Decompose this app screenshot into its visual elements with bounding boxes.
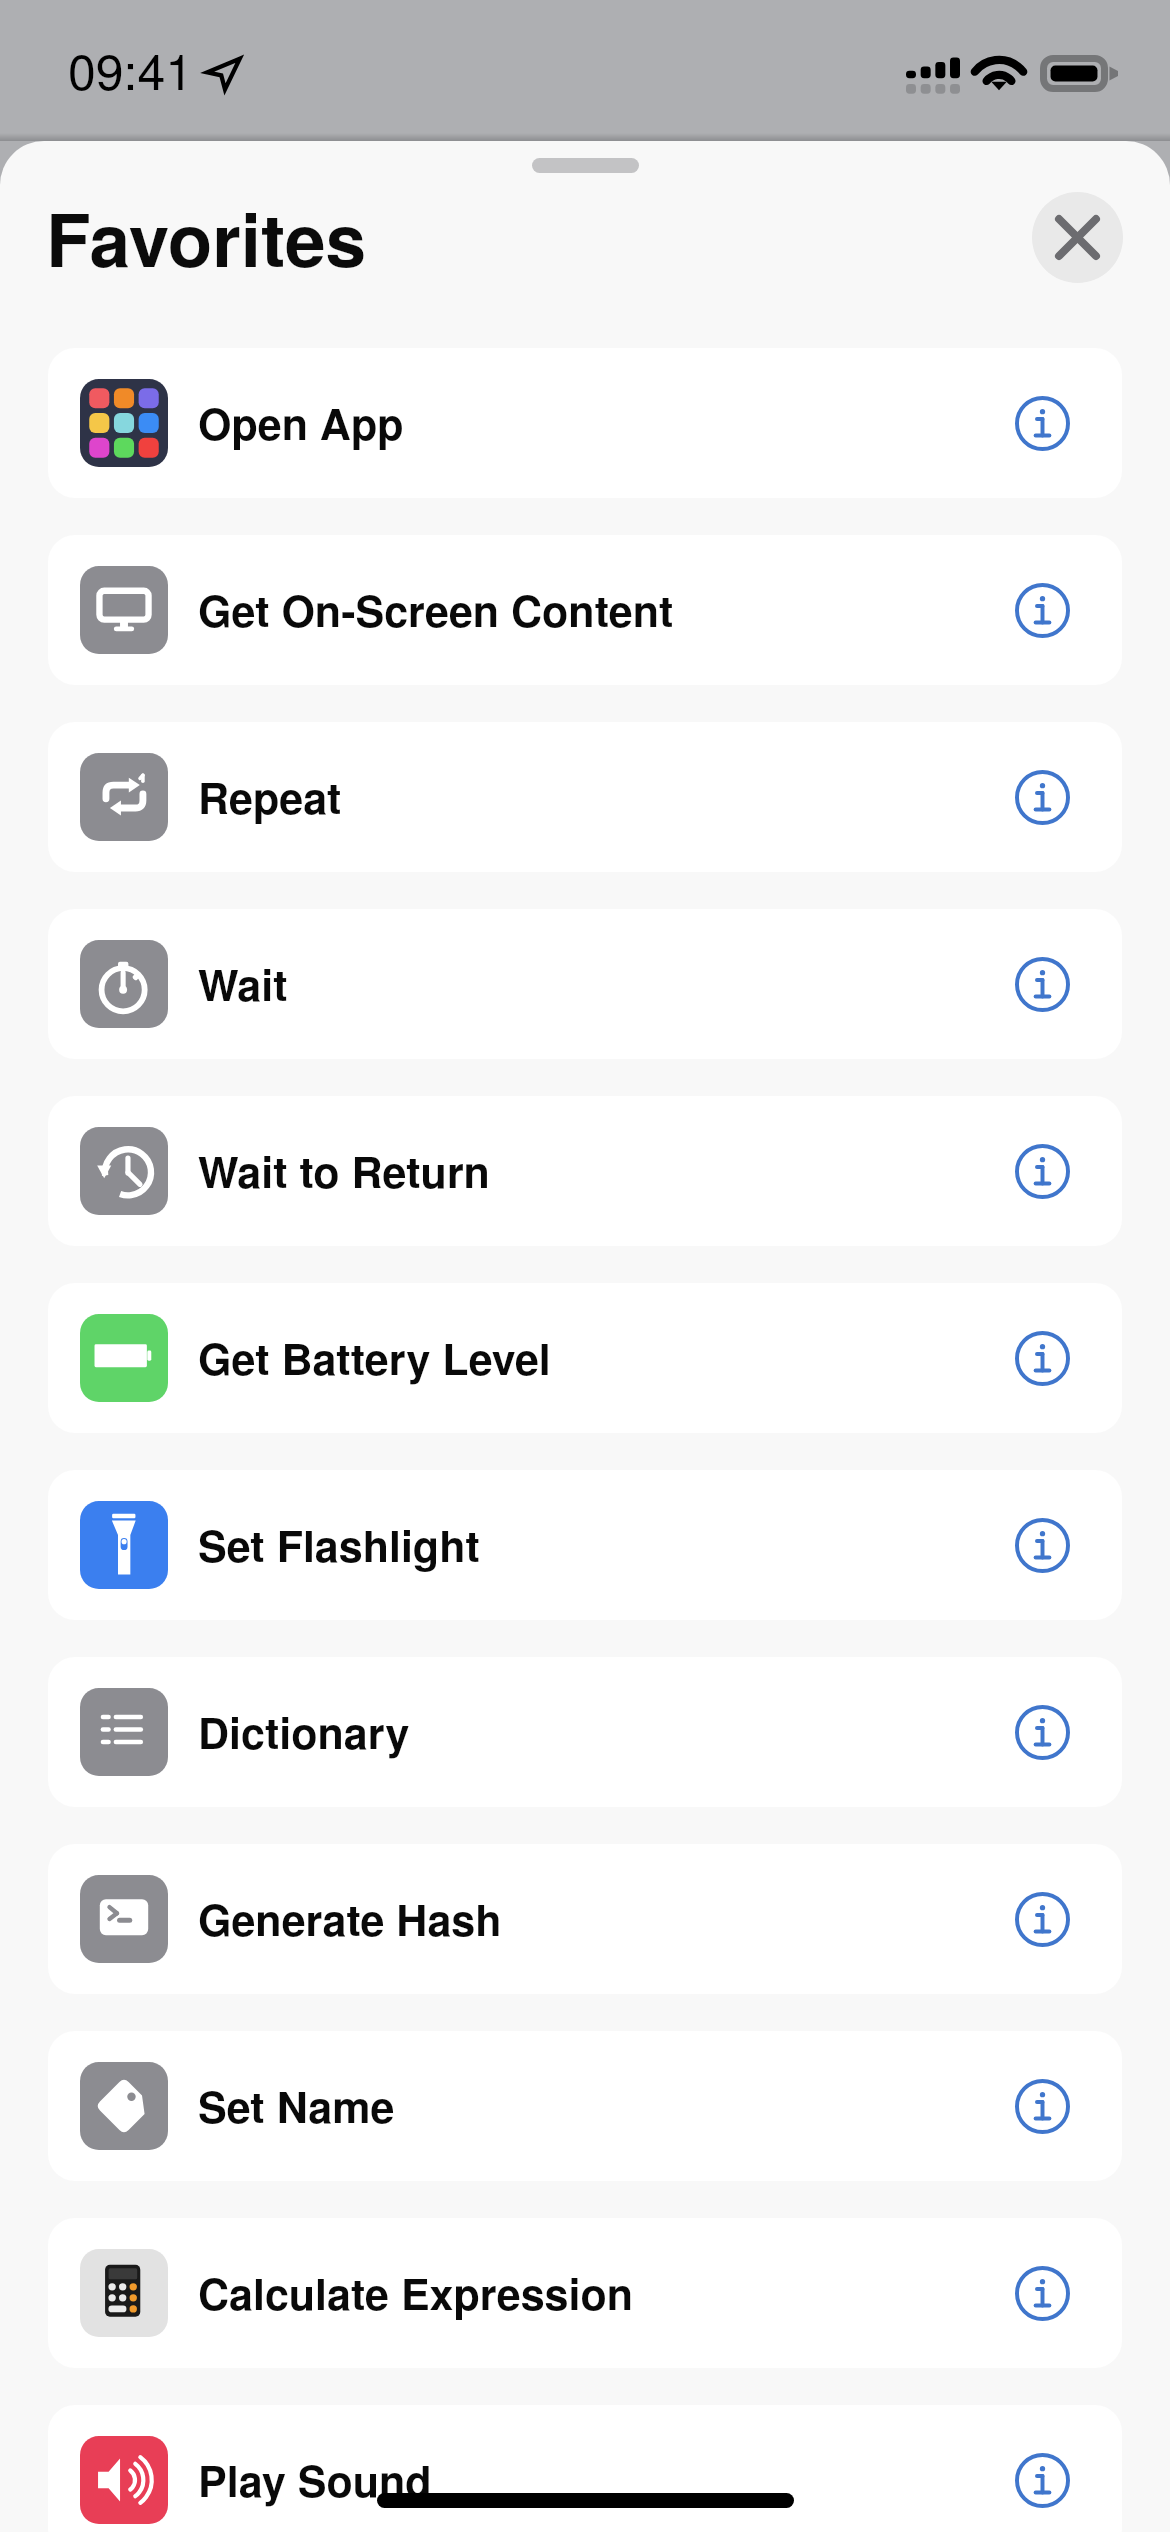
staticText: Generate Hash	[198, 1888, 502, 1950]
button[interactable]: Get Battery Level	[48, 1283, 1122, 1433]
button[interactable]: Info	[1004, 385, 1080, 461]
staticText: Set Flashlight	[198, 1514, 480, 1576]
button[interactable]: Info	[1004, 1694, 1080, 1770]
staticText: 09:41	[68, 33, 194, 105]
staticText: Wait	[198, 953, 288, 1015]
button[interactable]: Info	[1004, 759, 1080, 835]
staticText: Repeat	[198, 766, 342, 828]
button[interactable]: Info	[1004, 1320, 1080, 1396]
button[interactable]: Info	[1004, 1507, 1080, 1583]
button[interactable]: Info	[1004, 1133, 1080, 1209]
button[interactable]: Repeat	[48, 722, 1122, 872]
button[interactable]: Info	[1004, 2068, 1080, 2144]
button[interactable]: Open App	[48, 348, 1122, 498]
button[interactable]: Wait to Return	[48, 1096, 1122, 1246]
button[interactable]: Info	[1004, 1881, 1080, 1957]
staticText: Dictionary	[198, 1701, 410, 1763]
button[interactable]: Info	[1004, 2442, 1080, 2518]
button[interactable]: Set Name	[48, 2031, 1122, 2181]
staticText: Wait to Return	[198, 1140, 490, 1202]
staticText: Calculate Expression	[198, 2262, 633, 2324]
button[interactable]: Generate Hash	[48, 1844, 1122, 1994]
staticText: Open App	[198, 392, 404, 454]
staticText: Set Name	[198, 2075, 395, 2137]
button[interactable]: Info	[1004, 946, 1080, 1022]
staticText: Play Sound	[198, 2449, 432, 2511]
button[interactable]: Close	[1032, 192, 1123, 283]
button[interactable]: Dictionary	[48, 1657, 1122, 1807]
staticText: Favorites	[46, 185, 367, 290]
button[interactable]: Wait	[48, 909, 1122, 1059]
button[interactable]: Get On-Screen Content	[48, 535, 1122, 685]
staticText: Get On-Screen Content	[198, 579, 674, 641]
button[interactable]: Info	[1004, 572, 1080, 648]
button[interactable]: Calculate Expression	[48, 2218, 1122, 2368]
staticText: Get Battery Level	[198, 1327, 551, 1389]
button[interactable]: Set Flashlight	[48, 1470, 1122, 1620]
button[interactable]: Info	[1004, 2255, 1080, 2331]
button[interactable]: Play Sound	[48, 2405, 1122, 2532]
